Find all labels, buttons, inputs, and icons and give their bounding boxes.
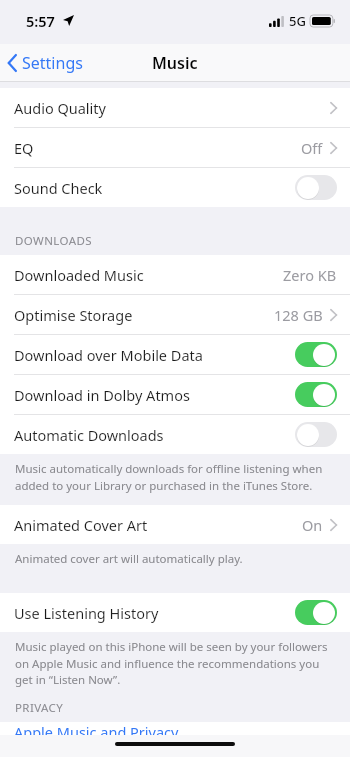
button[interactable]: Downloaded Music: [0, 255, 350, 294]
staticText: Music played on this iPhone will be seen…: [15, 639, 334, 687]
staticText: Music: [152, 52, 198, 74]
button[interactable]: On: [295, 382, 337, 407]
button[interactable]: EQ: [0, 128, 350, 167]
staticText: Use Listening History: [14, 603, 159, 623]
staticText: Sound Check: [14, 178, 103, 198]
button[interactable]: Settings: [0, 48, 91, 78]
staticText: Zero KB: [283, 265, 337, 285]
button[interactable]: On: [295, 600, 337, 625]
button[interactable]: Apple Music and Privacy: [0, 722, 350, 735]
staticText: PRIVACY: [15, 700, 64, 716]
staticText: Settings: [22, 52, 83, 74]
button[interactable]: Off: [295, 175, 337, 200]
button[interactable]: Use Listening History: [0, 593, 350, 632]
staticText: Audio Quality: [14, 98, 106, 118]
button[interactable]: On: [295, 342, 337, 367]
button[interactable]: Download in Dolby Atmos: [0, 375, 350, 414]
button[interactable]: Sound Check: [0, 168, 350, 207]
staticText: Downloaded Music: [14, 265, 144, 285]
staticText: Apple Music and Privacy: [14, 722, 179, 735]
button[interactable]: Off: [295, 422, 337, 447]
staticText: 5G: [289, 12, 306, 30]
staticText: DOWNLOADS: [15, 233, 92, 249]
button[interactable]: Optimise Storage: [0, 295, 350, 334]
staticText: Automatic Downloads: [14, 425, 164, 445]
staticText: 5:57: [26, 11, 55, 31]
button[interactable]: Download over Mobile Data: [0, 335, 350, 374]
button[interactable]: Animated Cover Art: [0, 505, 350, 544]
staticText: Animated Cover Art: [14, 515, 148, 535]
staticText: Off: [301, 138, 323, 158]
button[interactable]: Automatic Downloads: [0, 415, 350, 454]
staticText: Animated cover art will automatically pl…: [15, 551, 243, 567]
staticText: EQ: [14, 138, 34, 158]
staticText: On: [302, 515, 323, 535]
staticText: Music automatically downloads for offlin…: [15, 461, 334, 493]
staticText: Download in Dolby Atmos: [14, 385, 190, 405]
staticText: Optimise Storage: [14, 305, 133, 325]
button[interactable]: Audio Quality: [0, 88, 350, 127]
staticText: 128 GB: [274, 305, 323, 325]
staticText: Download over Mobile Data: [14, 345, 203, 365]
